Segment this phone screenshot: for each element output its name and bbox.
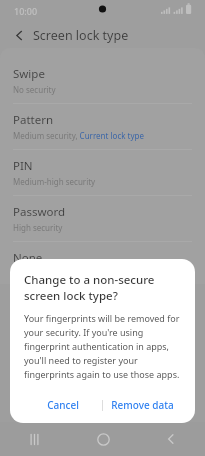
staticText: Password — [13, 204, 66, 220]
staticText: Pattern — [13, 112, 54, 128]
button[interactable]: Password — [0, 196, 205, 241]
button[interactable]: Back — [137, 422, 205, 456]
staticText: Your fingerprints will be removed for yo… — [24, 312, 181, 380]
staticText: None — [13, 250, 43, 266]
staticText: Medium-high security — [13, 176, 96, 187]
button[interactable]: Swipe — [0, 58, 205, 103]
button[interactable]: Pattern — [0, 104, 205, 149]
staticText: High security — [13, 222, 63, 233]
staticText: No security — [13, 84, 56, 95]
staticText: Swipe — [13, 66, 45, 82]
staticText: PIN — [13, 158, 33, 174]
button[interactable]: Cancel — [24, 394, 102, 416]
button[interactable]: PIN — [0, 150, 205, 195]
staticText: Screen lock type — [33, 27, 129, 44]
staticText: Remove data — [111, 398, 174, 412]
button[interactable]: Remove data — [103, 394, 181, 416]
staticText: Cancel — [47, 398, 79, 412]
button[interactable]: Home — [69, 422, 137, 456]
button[interactable]: None — [0, 242, 205, 284]
staticText: 10:00 — [14, 5, 38, 17]
staticText: Change to a non-secure screen lock type? — [24, 272, 181, 303]
button[interactable]: Navigate up — [8, 24, 30, 46]
staticText: Medium security, Current lock type — [13, 130, 144, 141]
button[interactable]: Recent apps — [0, 422, 69, 456]
